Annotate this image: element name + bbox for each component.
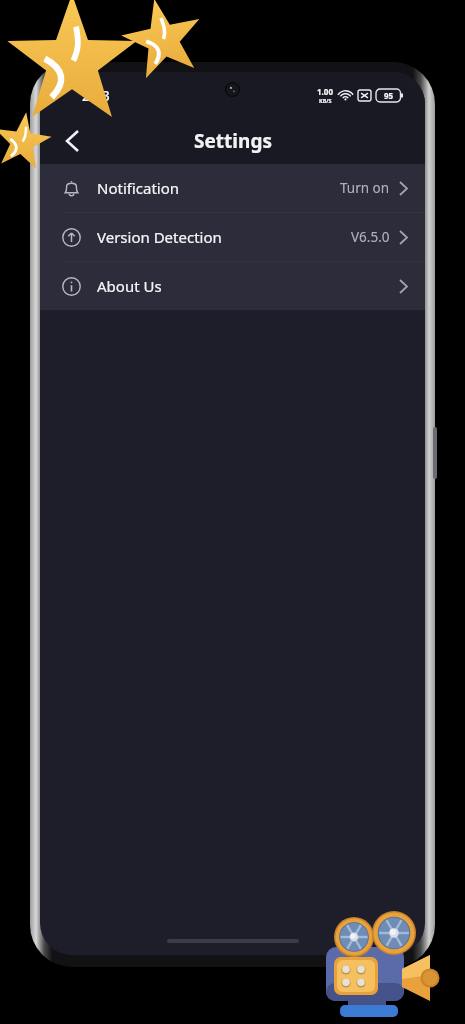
staticText: About Us bbox=[97, 276, 162, 296]
staticText: Turn on bbox=[340, 179, 390, 197]
staticText: Notification bbox=[97, 178, 180, 198]
staticText: Settings bbox=[194, 128, 272, 154]
staticText: V6.5.0 bbox=[351, 228, 390, 246]
staticText: 1.00 bbox=[317, 86, 333, 97]
button[interactable]: Back bbox=[50, 119, 94, 163]
staticText: KB/S bbox=[319, 97, 332, 104]
button[interactable]: Notification bbox=[40, 164, 425, 212]
button[interactable]: Version Detection bbox=[40, 213, 425, 261]
button[interactable]: About Us bbox=[40, 262, 425, 310]
staticText: 95 bbox=[384, 90, 394, 101]
staticText: 2:53 bbox=[82, 86, 110, 105]
staticText: Version Detection bbox=[97, 227, 222, 247]
